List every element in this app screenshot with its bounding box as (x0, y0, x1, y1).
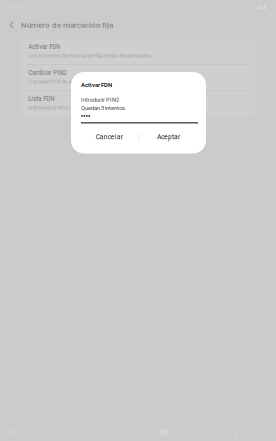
staticText: Cambiar PIN2 (28, 69, 67, 77)
staticText: Quedan 3 intentos. (81, 105, 127, 111)
button[interactable]: Activar FDN (20, 39, 256, 64)
button[interactable]: Cancelar (80, 128, 138, 146)
button[interactable]: Cambiar PIN2 (20, 65, 256, 90)
staticText: Aceptar (157, 133, 180, 141)
staticText: Cancelar (96, 133, 123, 141)
button[interactable]: Atrás (0, 13, 21, 37)
staticText: Los números de marcación fija están desa… (28, 52, 153, 59)
staticText: Activar FDN (81, 82, 112, 88)
staticText: Lista FDN (28, 95, 54, 103)
staticText: Introducir PIN2 (81, 96, 119, 103)
staticText: Número de marcación fija (21, 20, 113, 30)
staticText: Activar FDN (28, 43, 60, 51)
button[interactable]: Aceptar (139, 128, 198, 146)
staticText: Administrar lista de números de marcació… (28, 104, 142, 111)
button[interactable]: Lista FDN (20, 91, 256, 116)
staticText: Cambiar PIN de acceso a los números de m… (28, 78, 165, 85)
staticText: 10:00 (9, 4, 22, 10)
